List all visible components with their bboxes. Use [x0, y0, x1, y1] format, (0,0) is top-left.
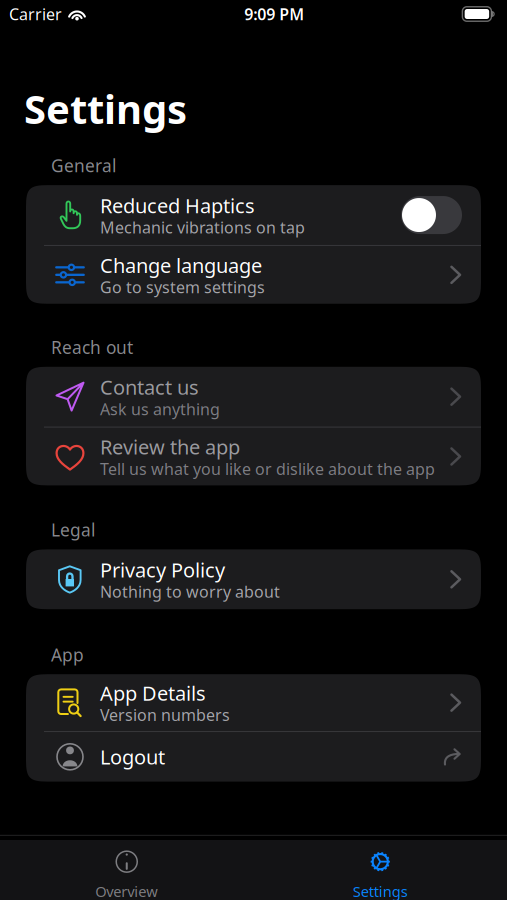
staticText: Go to system settings	[100, 276, 265, 298]
staticText: General	[51, 154, 116, 177]
button[interactable]: Settings	[253, 851, 507, 900]
staticText: Version numbers	[100, 704, 230, 725]
staticText: App Details	[100, 680, 206, 706]
button[interactable]: Privacy Policy	[26, 549, 481, 609]
button[interactable]: Logout	[26, 732, 481, 782]
staticText: Contact us	[100, 374, 199, 400]
staticText: Carrier	[9, 3, 62, 25]
staticText: App	[51, 643, 84, 666]
staticText: Privacy Policy	[100, 556, 225, 583]
button[interactable]: Reduced Haptics	[26, 185, 481, 245]
button[interactable]: Overview	[0, 851, 253, 900]
staticText: Tell us what you like or dislike about t…	[100, 458, 435, 479]
button[interactable]: App Details	[26, 674, 481, 731]
staticText: Legal	[51, 518, 95, 541]
staticText: Change language	[100, 252, 262, 278]
staticText: Mechanic vibrations on tap	[100, 217, 305, 238]
staticText: Review the app	[100, 434, 240, 460]
staticText: Logout	[100, 743, 165, 770]
staticText: Settings	[24, 82, 187, 135]
staticText: Reduced Haptics	[100, 192, 255, 219]
staticText: Reach out	[51, 336, 133, 359]
button[interactable]: Contact us	[26, 367, 481, 427]
staticText: 9:09 PM	[244, 3, 304, 25]
staticText: Nothing to worry about	[100, 581, 280, 602]
staticText: Settings	[353, 882, 408, 900]
button[interactable]: Change language	[26, 246, 481, 304]
staticText: Overview	[95, 882, 158, 900]
staticText: Ask us anything	[100, 398, 220, 419]
button[interactable]: Review the app	[26, 428, 481, 485]
